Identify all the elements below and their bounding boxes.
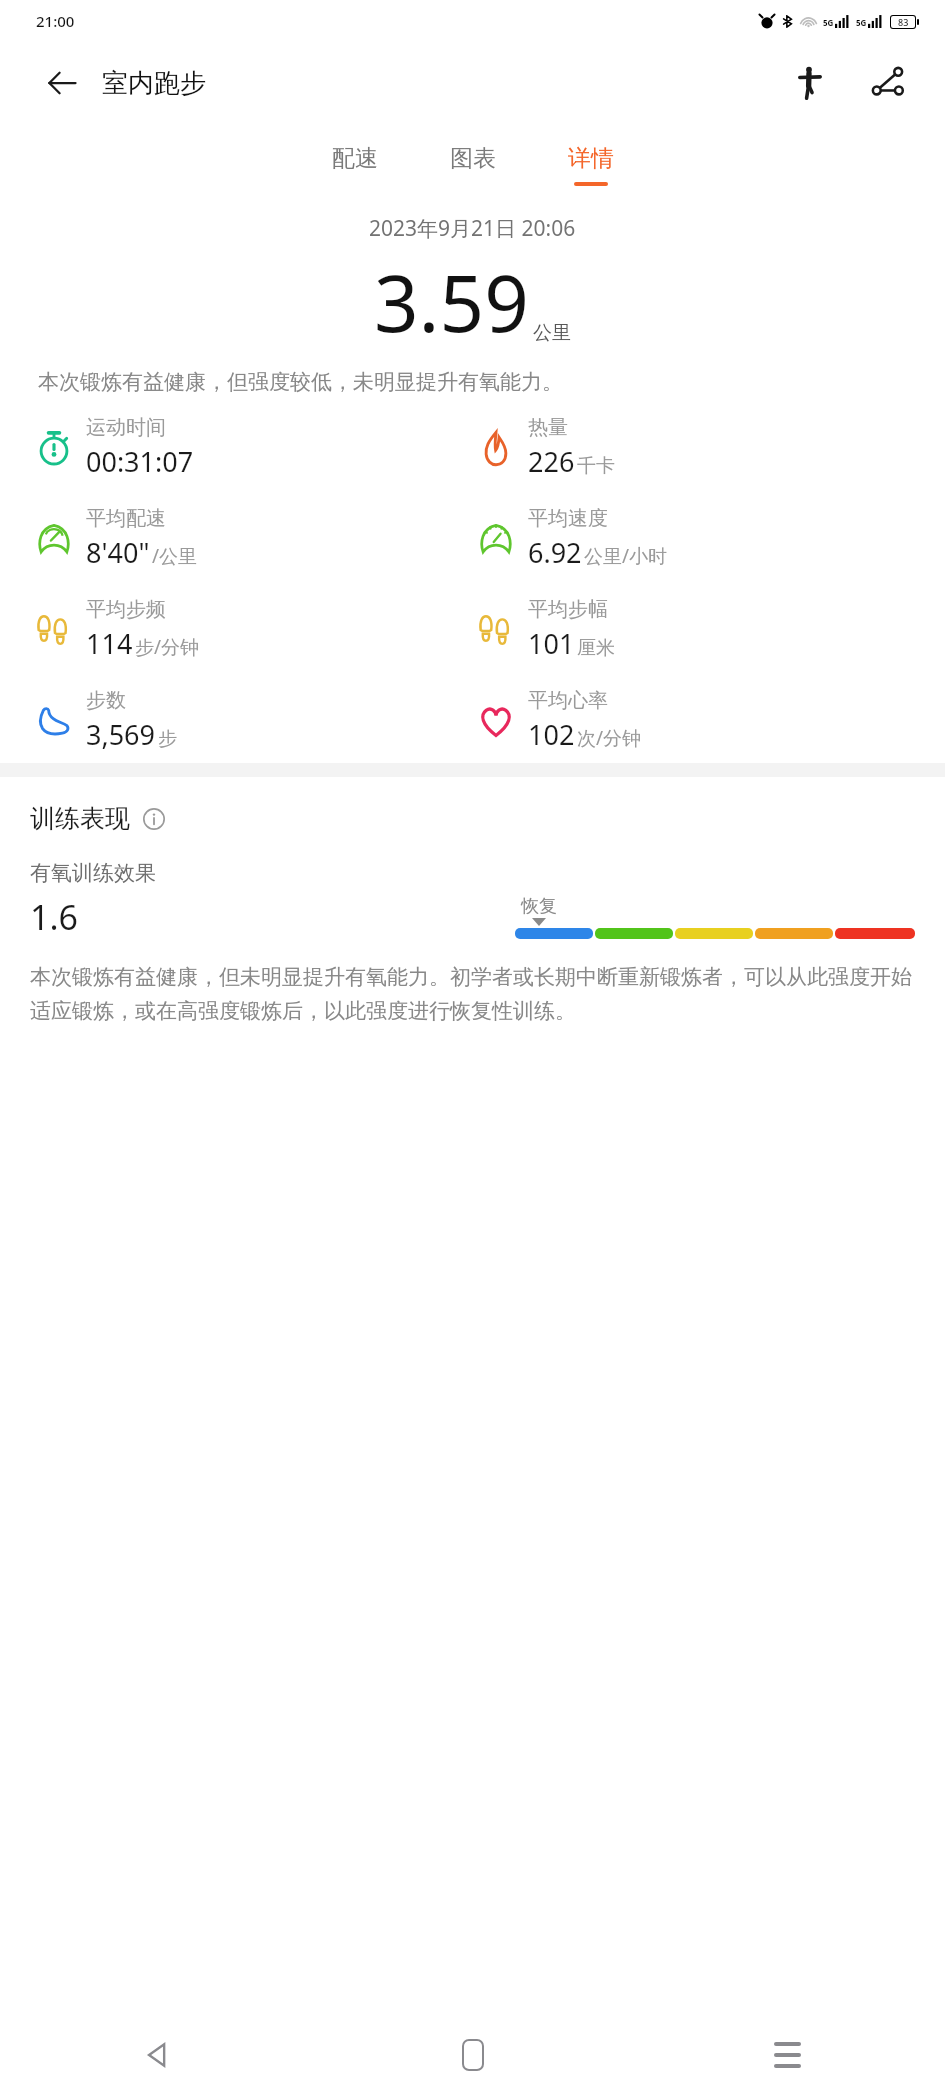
staticText: 21:00 [36, 11, 75, 31]
button[interactable]: 平均心率 [472, 686, 915, 755]
staticText: 图表 [450, 144, 496, 173]
staticText: 平均心率 [528, 688, 608, 713]
staticText: 00:31:07 [86, 443, 194, 480]
staticText: 平均配速 [86, 506, 166, 531]
staticText: 厘米 [577, 636, 615, 660]
button[interactable]: 步数 [30, 686, 472, 755]
staticText: 运动时间 [86, 415, 166, 440]
button[interactable]: 图表 [440, 140, 506, 190]
button[interactable]: 训练表现 [30, 803, 168, 834]
staticText: 102 [528, 716, 575, 753]
staticText: 2023年9月21日 20:06 [369, 214, 576, 243]
staticText: 本次锻炼有益健康，但强度较低，未明显提升有氧能力。 [38, 369, 907, 395]
staticText: 有氧训练效果 [30, 860, 156, 886]
button[interactable]: 运动时间 [30, 413, 472, 482]
button[interactable]: Home [315, 2010, 630, 2100]
button[interactable]: Back [40, 61, 84, 105]
staticText: 8'40" [86, 534, 150, 571]
button[interactable]: 详情 [558, 140, 624, 190]
staticText: 次/分钟 [577, 725, 642, 751]
staticText: 平均速度 [528, 506, 608, 531]
staticText: 平均步幅 [528, 597, 608, 622]
staticText: 千卡 [577, 454, 615, 478]
staticText: 恢复 [521, 895, 557, 918]
staticText: 配速 [332, 144, 378, 173]
button[interactable]: 平均配速 [30, 504, 472, 573]
button[interactable]: 配速 [322, 140, 388, 190]
button[interactable]: Share [861, 56, 915, 110]
button[interactable]: 平均步幅 [472, 595, 915, 664]
staticText: 114 [86, 625, 133, 662]
staticText: 训练表现 [30, 803, 130, 834]
staticText: 226 [528, 443, 575, 480]
button[interactable]: 平均步频 [30, 595, 472, 664]
staticText: /公里 [152, 543, 198, 569]
staticText: 热量 [528, 415, 568, 440]
button[interactable]: Exercise type [783, 56, 837, 110]
staticText: 3,569 [86, 716, 156, 753]
staticText: 平均步频 [86, 597, 166, 622]
button[interactable]: Back [0, 2010, 315, 2100]
staticText: 5G [823, 17, 834, 28]
staticText: 室内跑步 [102, 67, 206, 100]
staticText: 公里 [533, 321, 571, 345]
button[interactable]: 平均速度 [472, 504, 915, 573]
staticText: 3.59 [374, 249, 529, 355]
staticText: 83 [898, 16, 909, 28]
staticText: 步数 [86, 688, 126, 713]
staticText: 1.6 [30, 894, 79, 940]
staticText: 5G [856, 17, 867, 28]
other: Info [140, 805, 168, 833]
staticText: 详情 [568, 144, 614, 173]
staticText: 6.92 [528, 534, 582, 571]
button[interactable]: Recent apps [630, 2010, 945, 2100]
staticText: 本次锻炼有益健康，但未明显提升有氧能力。初学者或长期中断重新锻炼者，可以从此强度… [30, 964, 915, 1025]
button[interactable]: 热量 [472, 413, 915, 482]
staticText: 公里/小时 [584, 543, 668, 569]
staticText: 101 [528, 625, 575, 662]
staticText: 步/分钟 [135, 634, 200, 660]
staticText: 步 [158, 727, 177, 751]
